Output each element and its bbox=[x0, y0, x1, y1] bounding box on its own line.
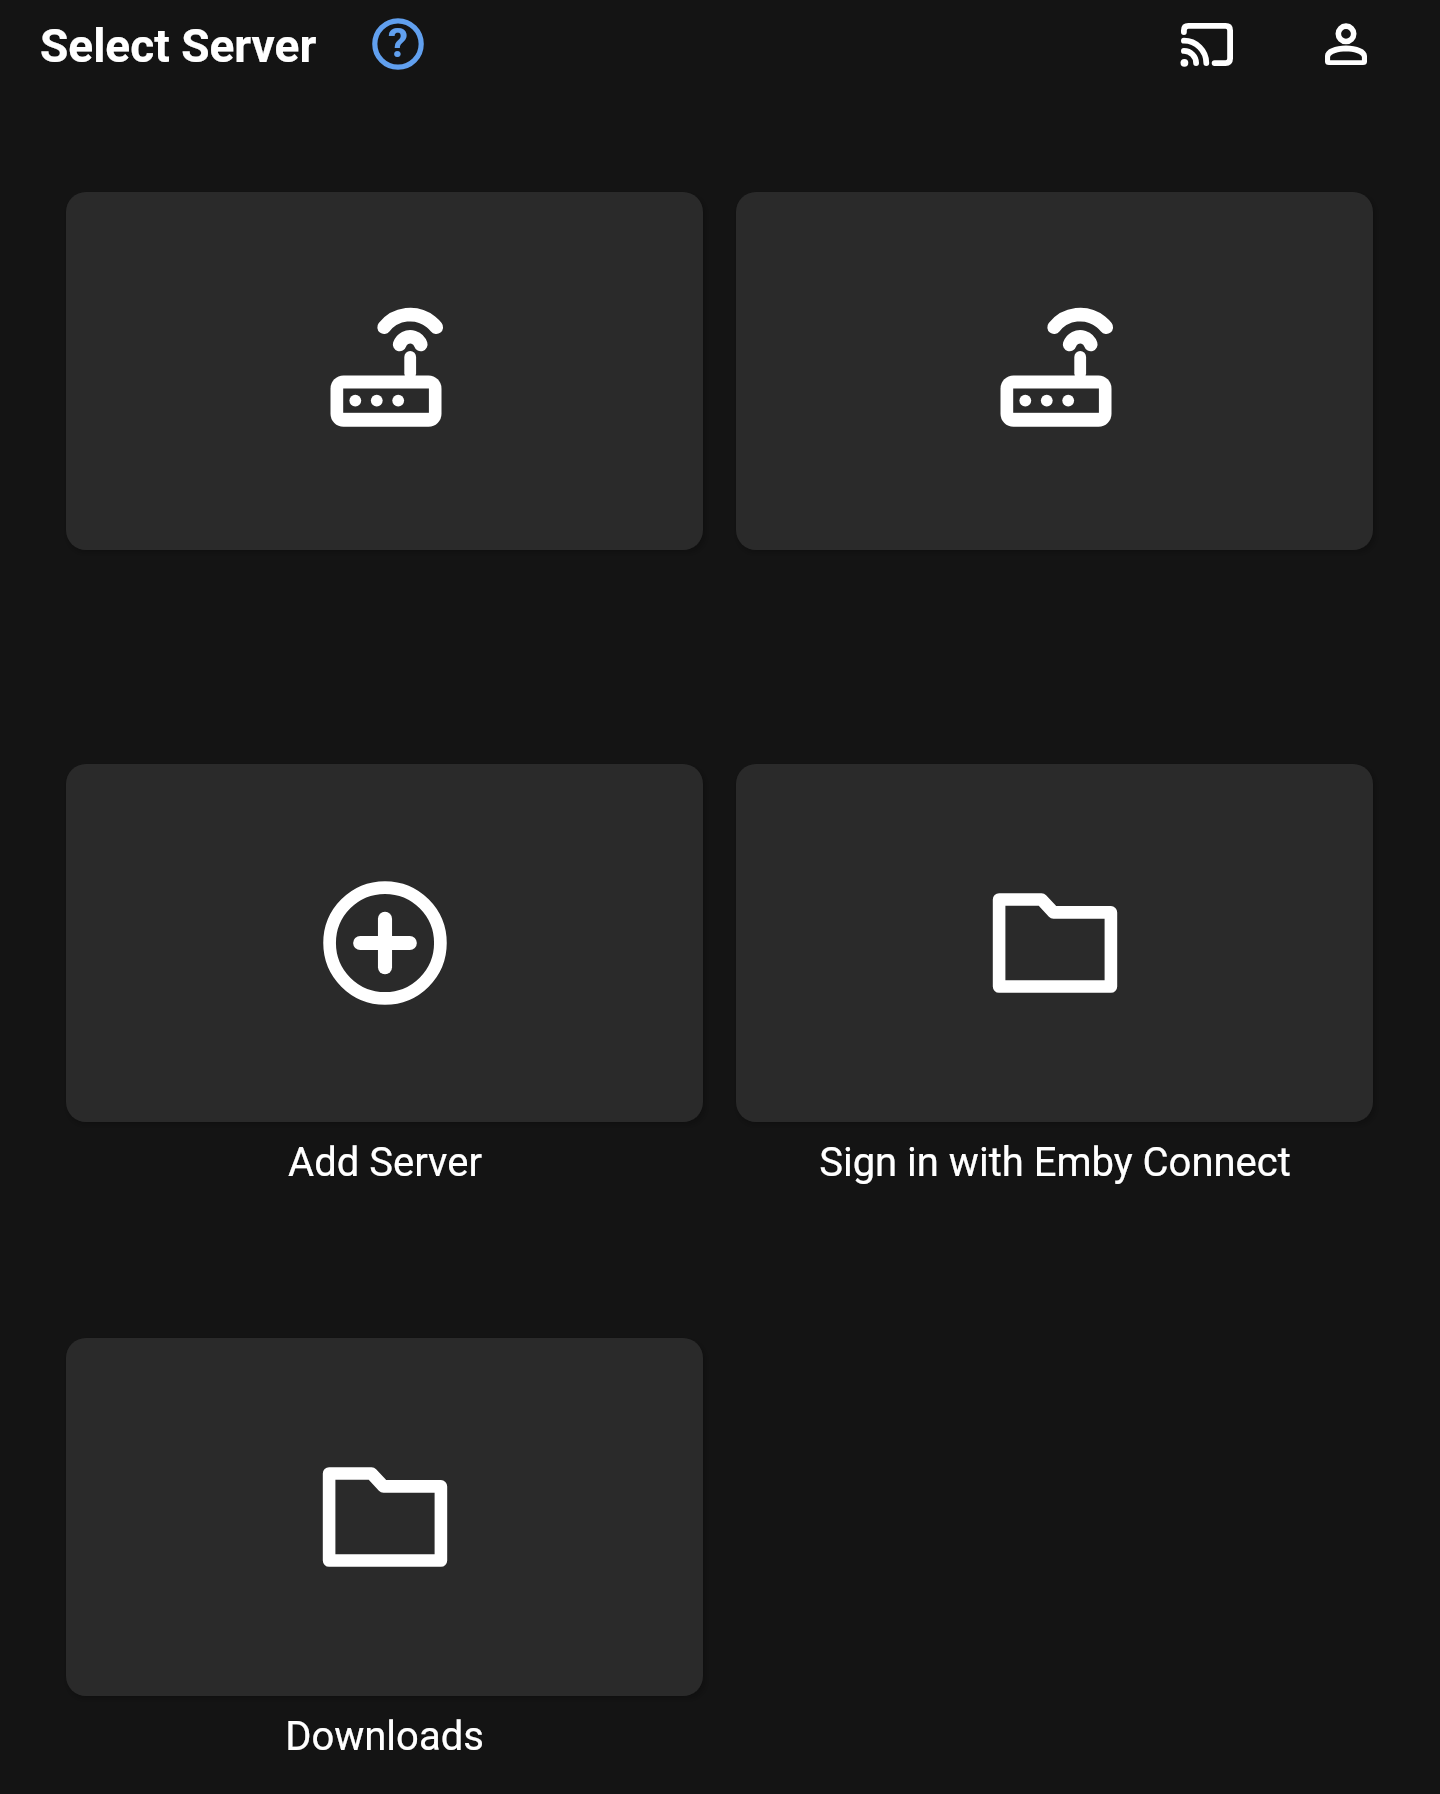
staticText: Sign in with Emby Connect bbox=[819, 1139, 1291, 1186]
button[interactable]: Sign in with Emby Connect bbox=[736, 764, 1373, 1186]
staticText: Select Server bbox=[40, 19, 317, 73]
button[interactable]: Network server bbox=[736, 192, 1373, 550]
button[interactable]: Local server bbox=[66, 192, 703, 550]
staticText: Add Server bbox=[288, 1139, 482, 1186]
staticText: ? bbox=[388, 20, 408, 67]
button[interactable]: Downloads bbox=[66, 1338, 703, 1760]
button[interactable]: Cast bbox=[1167, 4, 1247, 84]
button[interactable]: Account bbox=[1306, 4, 1386, 84]
staticText: Downloads bbox=[285, 1713, 484, 1760]
button[interactable]: Add Server bbox=[66, 764, 703, 1186]
button[interactable]: Help bbox=[366, 12, 430, 76]
